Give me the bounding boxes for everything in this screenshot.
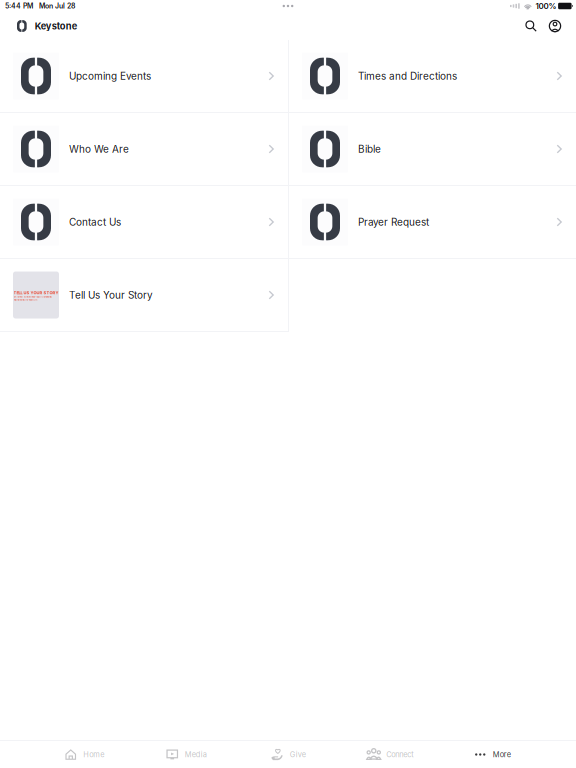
staticText: TELL US YOUR STORY [13, 290, 58, 295]
staticText: 5:44 PM [5, 2, 33, 10]
staticText: WE WANT TO HEAR HOW GOD IS WORKING [13, 296, 51, 298]
staticText: Give [290, 750, 306, 759]
button[interactable]: Search [519, 12, 543, 39]
button[interactable]: Upcoming Events [0, 40, 288, 112]
staticText: Home [83, 750, 104, 759]
button[interactable]: Connect [339, 741, 441, 767]
button[interactable]: Account [543, 12, 567, 39]
staticText: Tell Us Your Story [69, 289, 153, 301]
button[interactable]: Bible [289, 113, 576, 185]
button[interactable]: More [441, 741, 543, 767]
staticText: Media [185, 750, 207, 759]
staticText: Upcoming Events [69, 70, 151, 82]
staticText: Bible [358, 143, 381, 155]
button[interactable]: TELL US YOUR STORY [0, 259, 288, 331]
staticText: Mon Jul 28 [39, 2, 75, 10]
button[interactable]: Give [237, 741, 339, 767]
button[interactable]: Who We Are [0, 113, 288, 185]
button[interactable]: Contact Us [0, 186, 288, 258]
staticText: Connect [386, 750, 413, 759]
staticText: 100% [536, 1, 557, 11]
staticText: Prayer Request [358, 216, 429, 228]
staticText: Times and Directions [358, 70, 457, 82]
staticText: AND MOVING IN YOUR LIFE [13, 299, 37, 301]
button[interactable]: Prayer Request [289, 186, 576, 258]
staticText: More [493, 750, 511, 759]
staticText: Contact Us [69, 216, 121, 228]
staticText: Who We Are [69, 143, 129, 155]
button[interactable]: Times and Directions [289, 40, 576, 112]
button[interactable]: Media [135, 741, 237, 767]
staticText: Keystone [35, 20, 78, 32]
button[interactable]: Home [33, 741, 135, 767]
